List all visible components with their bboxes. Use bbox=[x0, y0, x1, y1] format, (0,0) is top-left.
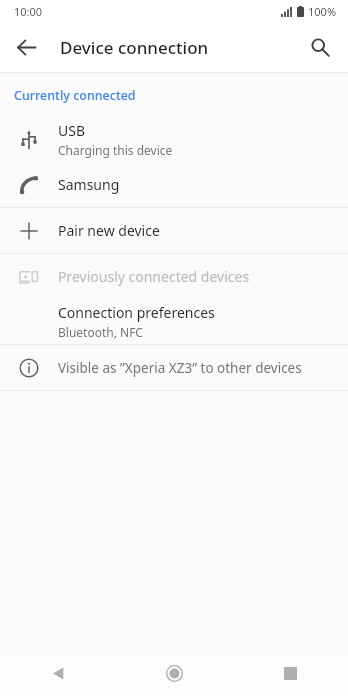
button[interactable]: Search bbox=[300, 27, 340, 67]
staticText: Currently connected bbox=[14, 87, 136, 104]
button[interactable]: Previously connected devices bbox=[0, 254, 348, 299]
staticText: USB bbox=[58, 121, 86, 140]
button[interactable]: USB bbox=[0, 117, 348, 162]
staticText: 10:00 bbox=[14, 4, 43, 19]
staticText: Previously connected devices bbox=[58, 267, 250, 286]
button[interactable]: Back bbox=[0, 650, 116, 696]
button[interactable]: Back bbox=[6, 27, 46, 67]
staticText: Visible as ”Xperia XZ3” to other devices bbox=[58, 359, 302, 377]
button[interactable]: Home bbox=[116, 650, 232, 696]
button[interactable]: Pair new device bbox=[0, 208, 348, 253]
staticText: Charging this device bbox=[58, 142, 173, 158]
button[interactable]: Visible as ”Xperia XZ3” to other devices bbox=[0, 345, 348, 390]
staticText: Connection preferences bbox=[58, 303, 215, 322]
button[interactable]: Connection preferences bbox=[0, 299, 348, 344]
staticText: Pair new device bbox=[58, 221, 160, 240]
staticText: Bluetooth, NFC bbox=[58, 324, 143, 340]
staticText: 100% bbox=[308, 4, 337, 19]
staticText: Samsung bbox=[58, 175, 120, 194]
staticText: Device connection bbox=[60, 36, 209, 59]
button[interactable]: Recents bbox=[232, 650, 348, 696]
button[interactable]: Samsung bbox=[0, 162, 348, 207]
